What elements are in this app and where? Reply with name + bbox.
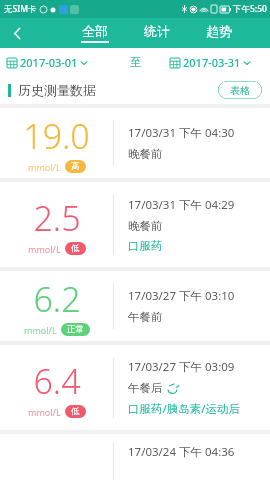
staticText: 晚餐前 [128, 147, 163, 161]
staticText: 午餐后 [128, 381, 163, 395]
button[interactable]: 2.5 [0, 182, 270, 267]
staticText: 2017-03-31 [183, 55, 241, 70]
staticText: 高 [71, 161, 80, 172]
staticText: 晚餐前 [128, 219, 163, 233]
staticText: mmol/L [24, 324, 57, 336]
staticText: mmol/L [28, 161, 61, 173]
button[interactable]: 2017-03-31 [170, 55, 270, 70]
button[interactable]: 19.0 [0, 108, 270, 178]
button[interactable]: 趋势 [205, 18, 233, 48]
staticText: 低 [71, 406, 80, 417]
staticText: 17/03/24 下午 04:36 [128, 444, 235, 460]
staticText: 全部 [82, 23, 108, 39]
staticText: 6.4 [33, 358, 81, 404]
staticText: 低 [71, 243, 80, 254]
button[interactable]: Back [0, 18, 34, 48]
staticText: mmol/L [28, 243, 61, 255]
staticText: 6.2 [33, 276, 81, 322]
staticText: 17/03/27 下午 03:10 [128, 288, 235, 304]
staticText: 17/03/31 下午 04:29 [128, 197, 235, 213]
button[interactable]: 6.2 [0, 271, 270, 341]
staticText: 趋势 [206, 23, 232, 39]
button[interactable]: 全部 [81, 18, 109, 48]
staticText: 正常 [67, 324, 84, 335]
button[interactable]: 17/03/24 下午 04:36 [0, 434, 270, 480]
staticText: 2017-03-01 [20, 55, 78, 70]
staticText: 17/03/31 下午 04:30 [128, 125, 235, 141]
staticText: 表格 [230, 84, 250, 97]
staticText: 口服药 [128, 239, 163, 253]
staticText: 19.0 [23, 113, 90, 159]
button[interactable]: 表格 [218, 81, 262, 99]
staticText: 2.5 [33, 195, 81, 241]
staticText: mmol/L [28, 406, 61, 418]
staticText: 午餐前 [128, 310, 163, 324]
staticText: 统计 [144, 23, 170, 39]
button[interactable]: 2017-03-01 [7, 55, 104, 70]
staticText: 至 [130, 55, 141, 69]
staticText: 历史测量数据 [18, 82, 96, 98]
button[interactable]: 统计 [143, 18, 171, 48]
staticText: 下午5:50 [233, 3, 267, 15]
staticText: 无SIM卡 [4, 3, 37, 15]
staticText: 口服药/胰岛素/运动后 [128, 401, 241, 417]
button[interactable]: 6.4 [0, 345, 270, 430]
staticText: 17/03/27 下午 03:09 [128, 359, 235, 375]
